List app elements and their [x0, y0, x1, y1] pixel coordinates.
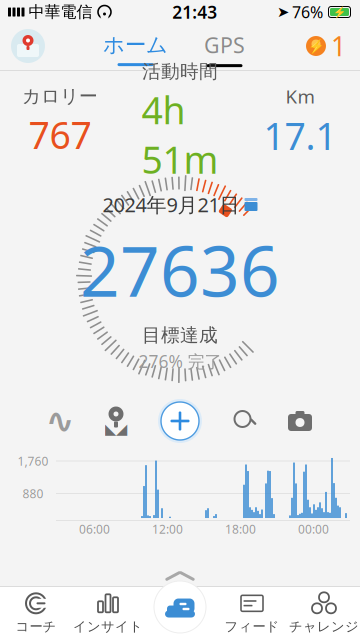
- staticText: 21:43: [172, 0, 217, 23]
- staticText: 18:00: [225, 521, 256, 537]
- button[interactable]: Activity: [144, 586, 216, 640]
- staticText: 06:00: [79, 521, 110, 537]
- staticText: カロリー: [22, 85, 98, 108]
- button[interactable]: Streak 1: [298, 24, 354, 68]
- button[interactable]: ホーム: [95, 26, 176, 66]
- staticText: 00:00: [298, 521, 329, 537]
- staticText: ◣◢: [105, 421, 127, 437]
- staticText: 目標達成: [142, 324, 218, 347]
- staticText: フィード: [224, 618, 279, 635]
- button[interactable]: インサイト: [72, 586, 144, 640]
- button[interactable]: GPS: [176, 25, 253, 67]
- staticText: 767: [28, 110, 91, 159]
- staticText: 12:00: [152, 521, 183, 537]
- button[interactable]: Add: [144, 397, 216, 445]
- staticText: ∿: [45, 401, 74, 441]
- staticText: 76%: [292, 1, 323, 23]
- staticText: Km: [285, 84, 314, 109]
- button[interactable]: Profile: [6, 24, 50, 68]
- staticText: 276% 完了: [138, 350, 221, 373]
- staticText: 880: [22, 485, 43, 501]
- button[interactable]: Location: [88, 397, 144, 445]
- staticText: ホーム: [103, 32, 168, 58]
- staticText: 4h 51m: [141, 85, 218, 184]
- staticText: 活動時間: [142, 60, 218, 83]
- staticText: ⚡: [333, 6, 346, 18]
- staticText: ⚡: [307, 38, 324, 54]
- staticText: 17.1: [263, 111, 336, 160]
- staticText: ➤: [277, 4, 289, 20]
- button[interactable]: チャレンジ: [288, 586, 360, 640]
- staticText: インサイト: [73, 618, 143, 635]
- staticText: チャレンジ: [289, 618, 359, 635]
- button[interactable]: コーチ: [0, 586, 72, 640]
- staticText: 27636: [80, 224, 280, 316]
- button[interactable]: フィード: [216, 586, 288, 640]
- button[interactable]: Expand: [150, 566, 210, 586]
- staticText: 中華電信: [28, 2, 92, 22]
- button[interactable]: Search: [216, 397, 272, 445]
- staticText: 2024年9月21日: [102, 191, 239, 218]
- staticText: コーチ: [15, 618, 56, 635]
- staticText: 1,760: [17, 453, 48, 469]
- staticText: GPS: [204, 31, 245, 59]
- button[interactable]: Route: [32, 397, 88, 445]
- staticText: 1: [331, 28, 346, 64]
- button[interactable]: Camera: [272, 397, 328, 445]
